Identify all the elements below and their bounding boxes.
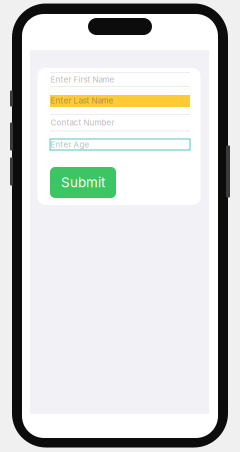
staticText: Submit xyxy=(61,174,105,190)
staticText: Enter Age xyxy=(50,140,89,149)
staticText: Enter Last Name xyxy=(50,96,113,105)
button[interactable]: Submit xyxy=(50,167,116,198)
staticText: Enter First Name xyxy=(50,75,114,84)
staticText: Contact Number xyxy=(50,118,114,127)
